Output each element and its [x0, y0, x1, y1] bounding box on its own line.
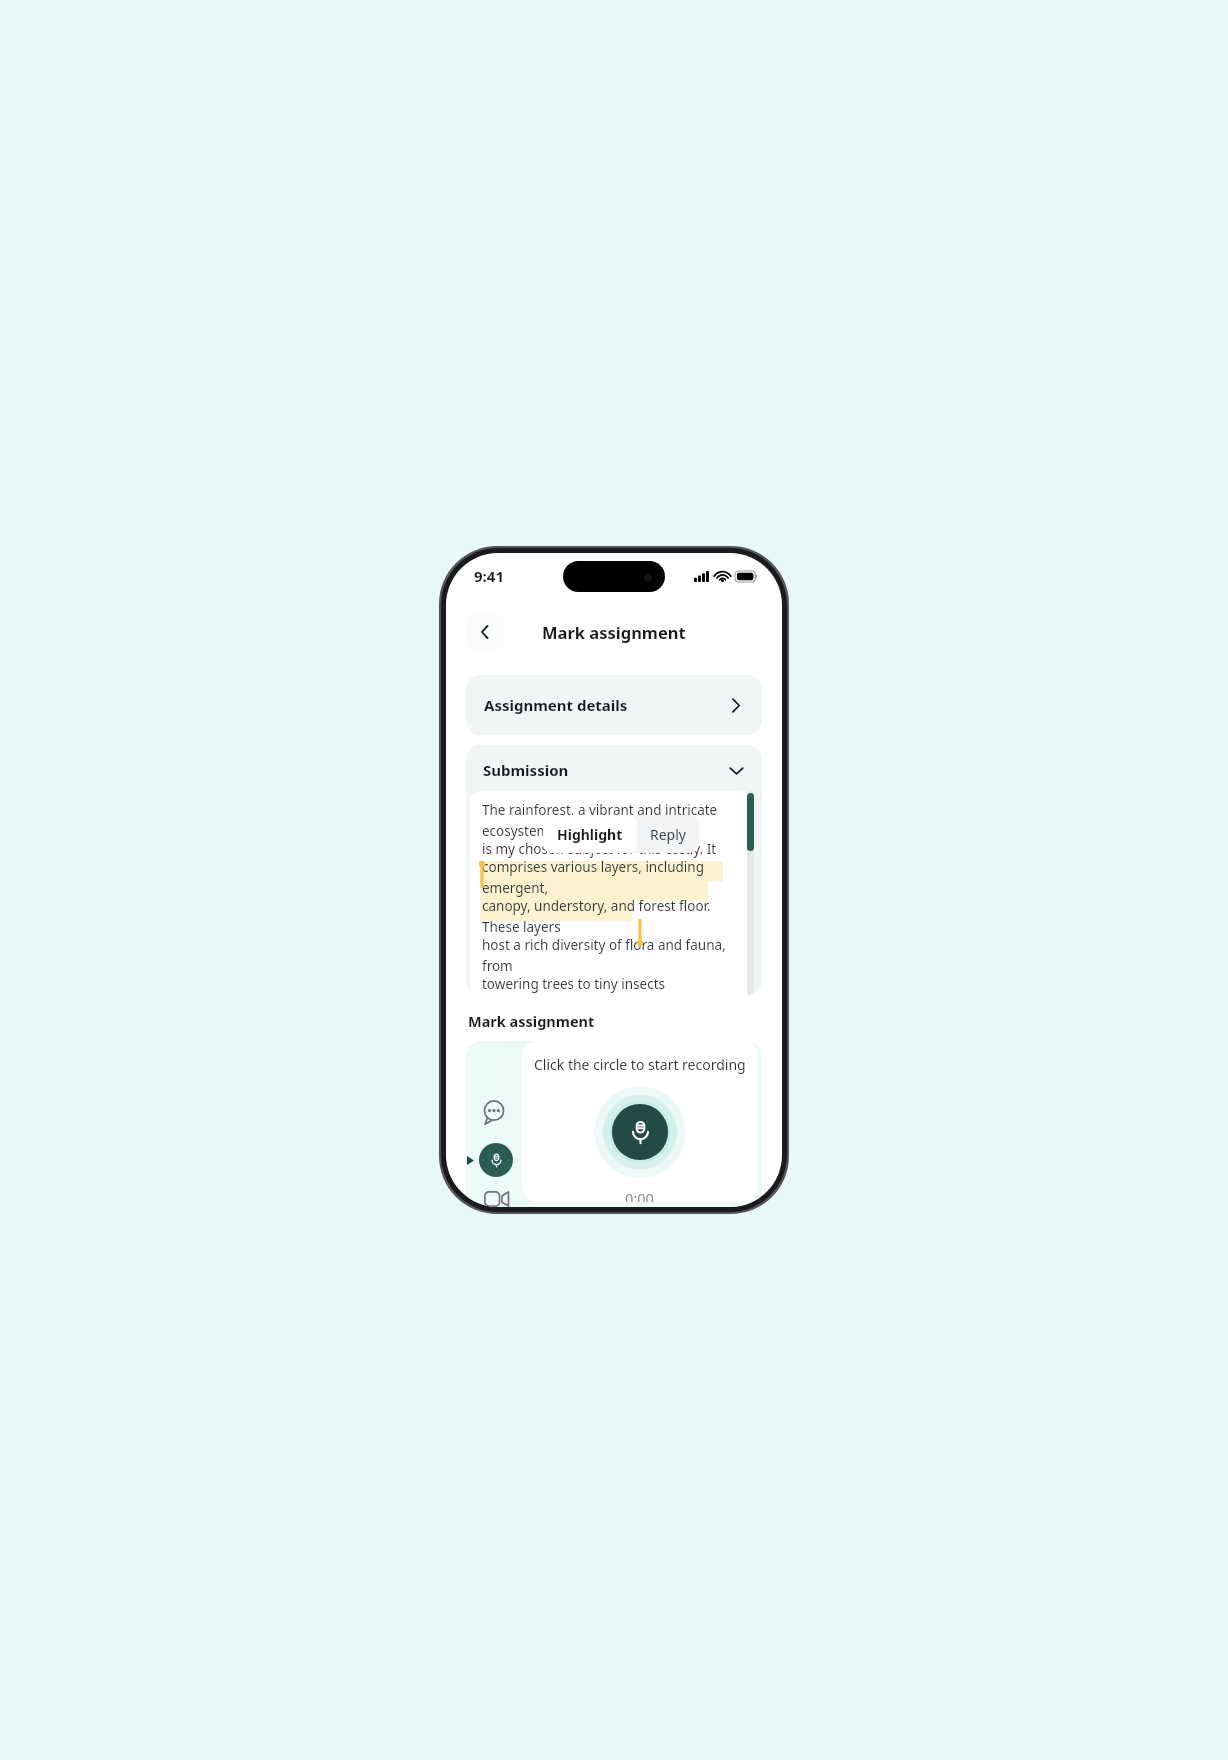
- staticText: canopy, understory, and forest floor. Th…: [482, 897, 740, 936]
- staticText: 0:00: [625, 1188, 654, 1202]
- staticText: is my chosen subject for this essay. It: [482, 840, 717, 858]
- staticText: Record an audio: [550, 1053, 661, 1073]
- staticText: Submission: [483, 760, 569, 780]
- staticText: host a rich diversity of flora and fauna…: [482, 936, 740, 975]
- other: Collapse: [728, 762, 745, 779]
- button[interactable]: Reply: [637, 815, 699, 853]
- staticText: Reply: [650, 825, 686, 844]
- staticText: Click the circle to start recording: [534, 1055, 746, 1074]
- button[interactable]: Expand: [724, 1052, 746, 1074]
- staticText: 9:41: [474, 566, 504, 586]
- button[interactable]: Highlight: [543, 815, 637, 853]
- button[interactable]: Start recording: [594, 1086, 686, 1178]
- button[interactable]: Assignment details: [466, 675, 762, 735]
- button[interactable]: Comment: [477, 1095, 511, 1129]
- staticText: Highlight: [557, 825, 623, 844]
- staticText: The rainforest, a vibrant and intricate …: [482, 801, 740, 840]
- staticText: Mark assignment: [542, 621, 686, 643]
- button[interactable]: Submission: [466, 745, 762, 791]
- button[interactable]: Video: [479, 1191, 513, 1207]
- staticText: Mark assignment: [468, 1011, 595, 1031]
- staticText: towering trees to tiny insects: [482, 975, 665, 993]
- staticText: Assignment details: [484, 695, 628, 715]
- staticText: comprises various layers, including emer…: [482, 858, 740, 897]
- button[interactable]: Audio: [479, 1143, 513, 1177]
- button[interactable]: Back: [466, 613, 504, 651]
